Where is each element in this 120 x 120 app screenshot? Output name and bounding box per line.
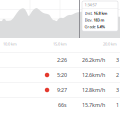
staticText: Elev. 183 m: [84, 17, 104, 23]
staticText: Grade 6.4%: [84, 24, 105, 29]
button[interactable]: 5:20: [0, 67, 120, 82]
staticText: 3: [116, 56, 119, 64]
staticText: 2: [116, 71, 119, 79]
staticText: 15.0 km: [53, 41, 67, 47]
staticText: Dist. 16.8 km: [84, 11, 107, 16]
staticText: 1: [116, 101, 119, 109]
staticText: 2:26: [57, 56, 67, 64]
staticText: 9:27: [57, 86, 67, 94]
staticText: 10.0 km: [3, 41, 17, 47]
staticText: 5:20: [57, 71, 67, 79]
staticText: 26.2km/h: [82, 56, 105, 64]
button[interactable]: 2:26: [0, 52, 120, 67]
button[interactable]: 9:27: [0, 82, 120, 97]
staticText: 12.6km/h: [82, 71, 105, 79]
button[interactable]: 66s: [0, 97, 120, 112]
staticText: 20.0 km: [103, 41, 117, 47]
staticText: 12.8km/h: [82, 86, 105, 94]
staticText: 15.7km/h: [82, 101, 105, 109]
staticText: 3: [116, 86, 119, 94]
staticText: 1:34:57: [84, 2, 96, 7]
staticText: 66s: [58, 101, 67, 109]
